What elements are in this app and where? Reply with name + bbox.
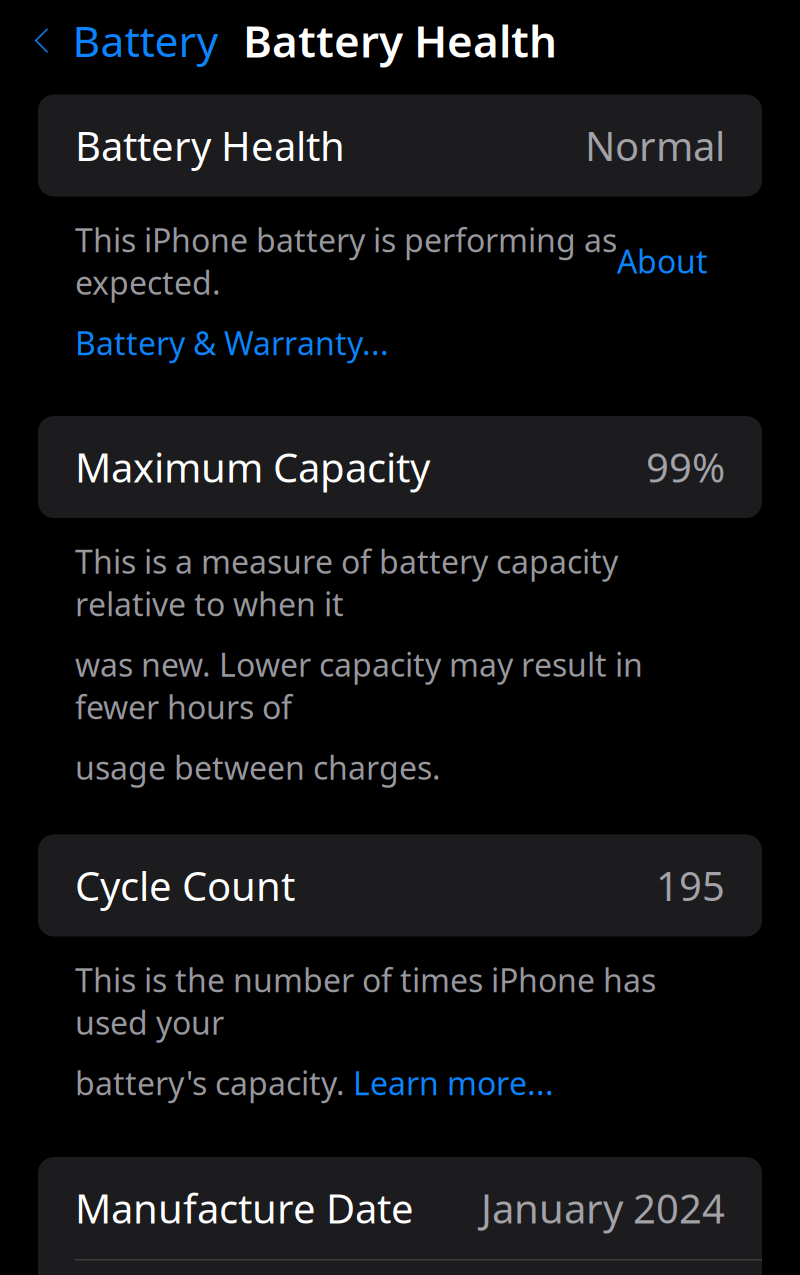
staticText: Battery Health [243, 11, 557, 70]
staticText: was new. Lower capacity may result in fe… [75, 643, 643, 728]
button[interactable]: Maximum Capacity [38, 416, 762, 518]
staticText: Manufacture Date [75, 1181, 414, 1234]
button[interactable]: Cycle Count [38, 834, 762, 936]
staticText: This is a measure of battery capacity re… [75, 540, 618, 625]
staticText: Maximum Capacity [75, 440, 430, 494]
staticText: This iPhone battery is performing as exp… [75, 218, 617, 303]
staticText: Battery [72, 12, 218, 69]
staticText: Learn more... [353, 1061, 554, 1104]
button[interactable]: Battery Health [38, 94, 762, 196]
staticText: 99% [646, 440, 725, 494]
staticText: This is the number of times iPhone has u… [75, 958, 656, 1043]
staticText: About [617, 240, 708, 282]
staticText: Battery & Warranty... [75, 321, 389, 364]
staticText: Cycle Count [75, 859, 295, 912]
staticText: Battery Health [75, 119, 345, 172]
button[interactable]: Manufacture Date [38, 1157, 762, 1259]
button[interactable]: Learn more... [353, 1061, 554, 1104]
button[interactable]: First Use [38, 1260, 762, 1275]
staticText: usage between charges. [75, 746, 441, 788]
staticText: January 2024 [481, 1181, 725, 1234]
button[interactable]: About [617, 240, 708, 282]
staticText: Normal [585, 119, 725, 172]
button[interactable]: Battery [0, 4, 218, 77]
staticText: battery's capacity. [75, 1061, 353, 1104]
button[interactable]: Battery & Warranty... [75, 321, 389, 364]
staticText: 195 [656, 859, 725, 912]
